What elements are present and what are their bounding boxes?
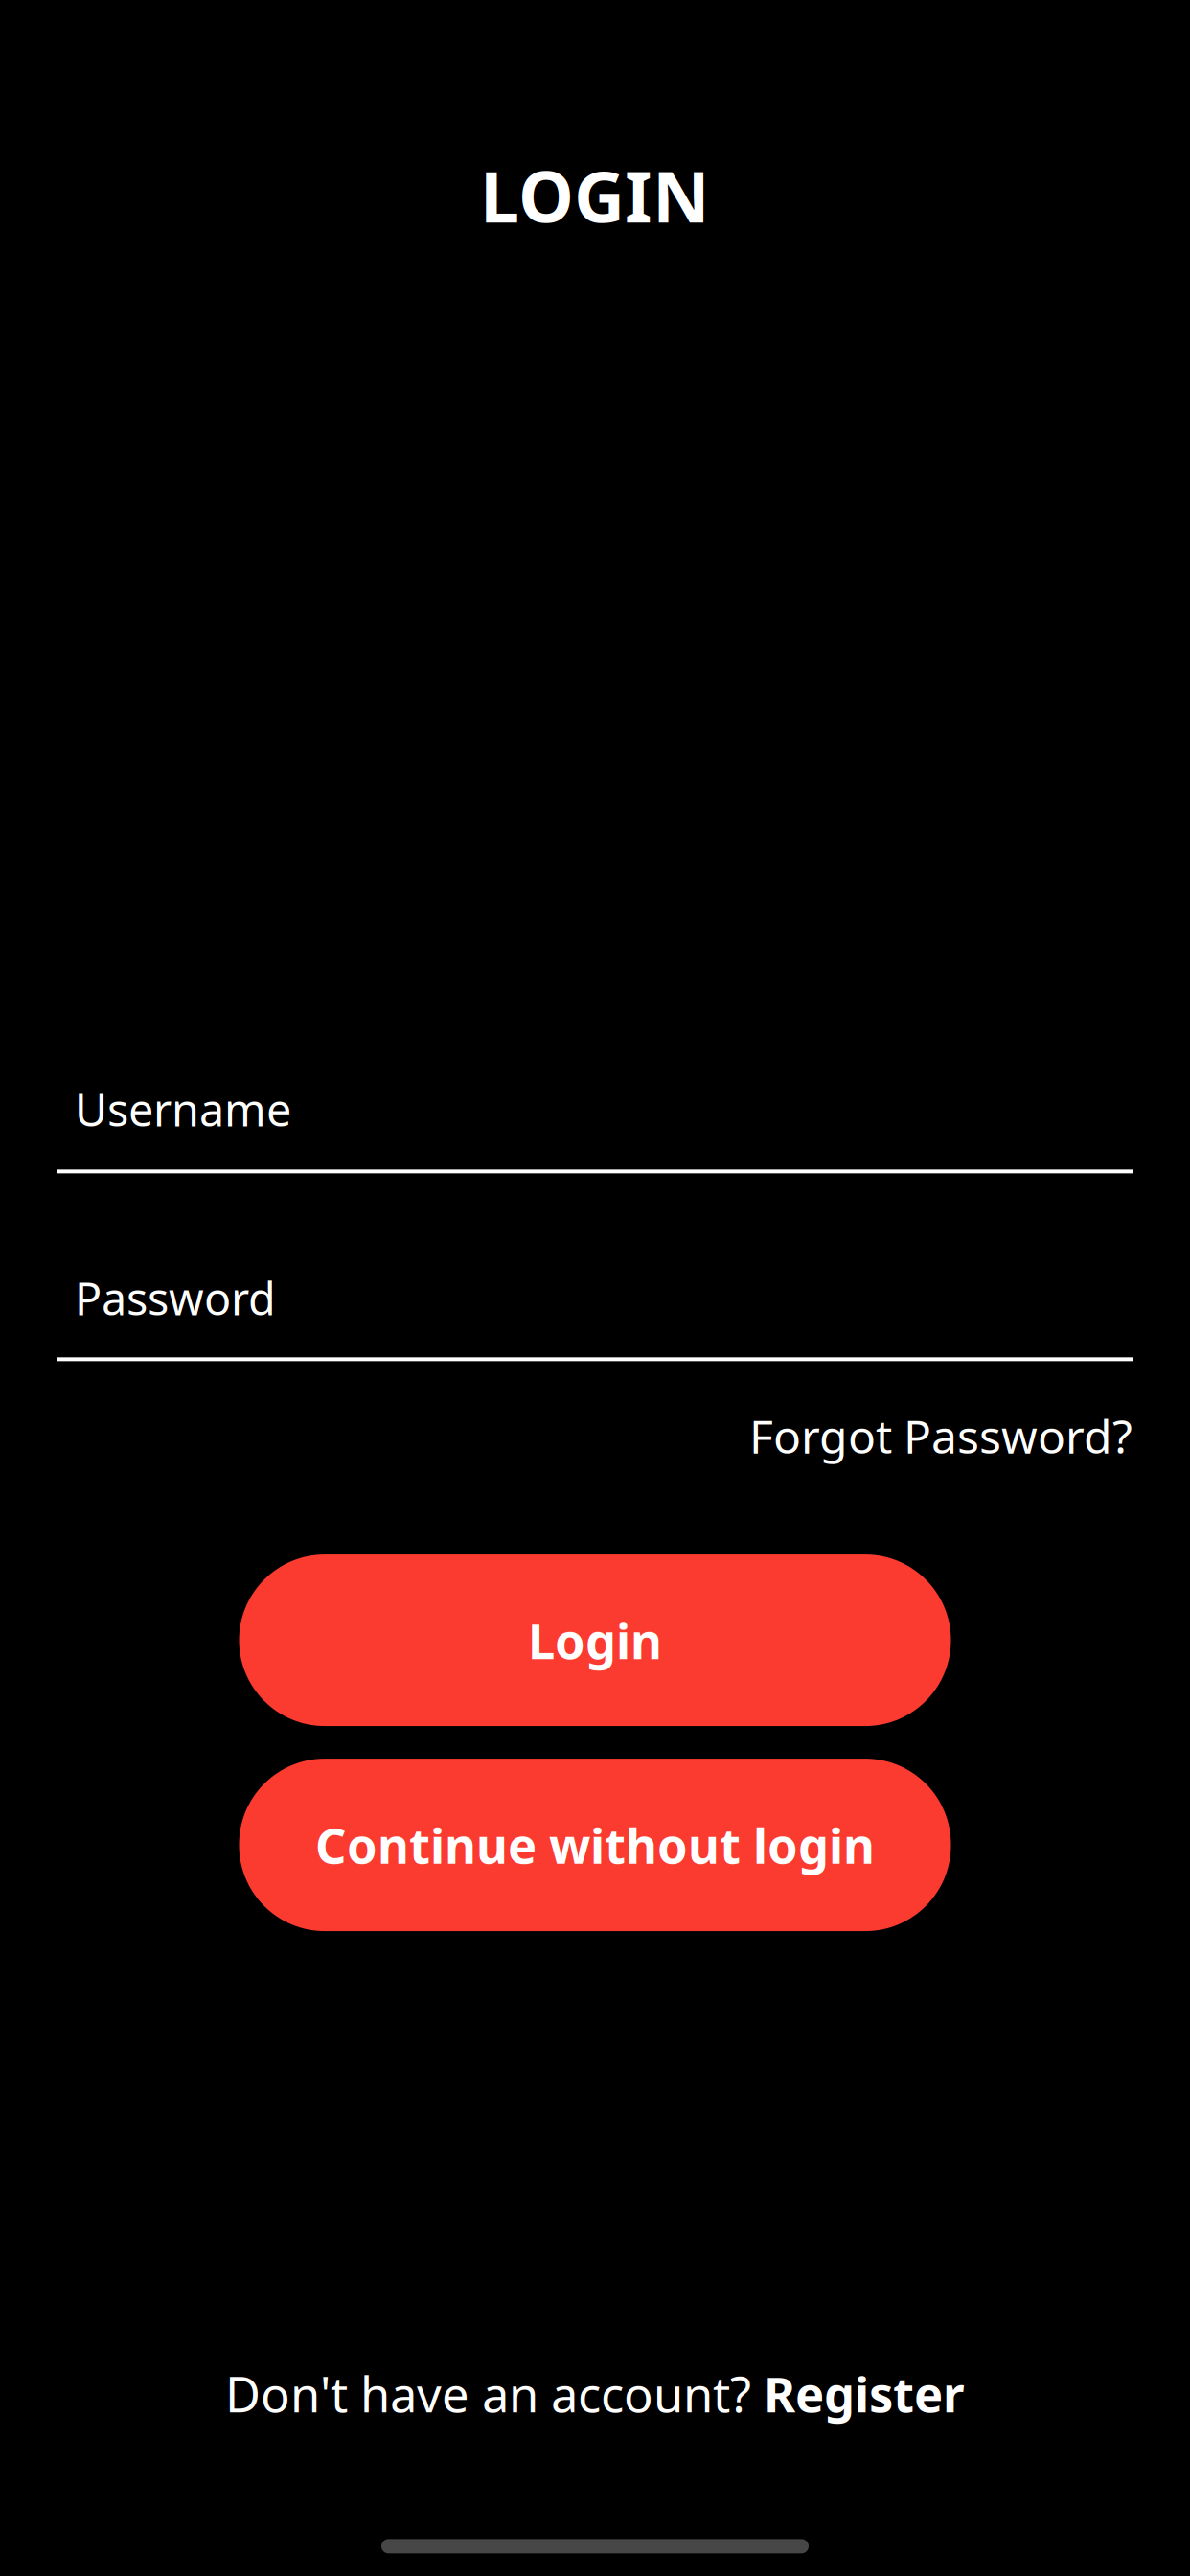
button[interactable]: Username (57, 1079, 1133, 1173)
button[interactable]: Login (239, 1555, 951, 1726)
button[interactable]: Password (57, 1268, 1133, 1361)
button[interactable]: Forgot Password? (749, 1405, 1133, 1466)
button[interactable]: Don't have an account? (225, 2361, 965, 2426)
staticText: Forgot Password? (749, 1405, 1133, 1466)
staticText: Login (528, 1608, 662, 1672)
staticText: Don't have an account? (225, 2361, 764, 2426)
staticText: LOGIN (480, 149, 710, 242)
staticText: Username (75, 1079, 291, 1139)
staticText: Password (75, 1268, 276, 1328)
button[interactable]: Continue without login (239, 1759, 951, 1931)
staticText: Continue without login (315, 1813, 875, 1877)
staticText: Register (764, 2361, 965, 2426)
